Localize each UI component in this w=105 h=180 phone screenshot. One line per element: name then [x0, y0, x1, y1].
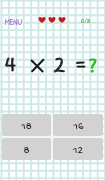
staticText: =	[75, 53, 87, 78]
staticText: 4	[5, 52, 16, 79]
staticText: 4	[5, 52, 16, 79]
button[interactable]: 8	[2, 138, 51, 160]
button[interactable]: 16	[53, 114, 103, 136]
button[interactable]: MENU	[4, 16, 23, 29]
staticText: 2	[54, 54, 65, 79]
staticText: 2	[54, 54, 65, 79]
staticText: 16	[73, 121, 84, 134]
staticText: ?	[89, 56, 97, 79]
staticText: =	[75, 53, 87, 78]
staticText: 18	[21, 121, 32, 134]
staticText: 12	[73, 145, 83, 158]
staticText: 8	[23, 145, 30, 158]
staticText: MENU	[5, 17, 22, 28]
staticText: ?	[89, 56, 97, 79]
button[interactable]: 18	[2, 114, 51, 136]
staticText: 0/8	[81, 16, 91, 25]
button[interactable]: 12	[53, 138, 103, 160]
